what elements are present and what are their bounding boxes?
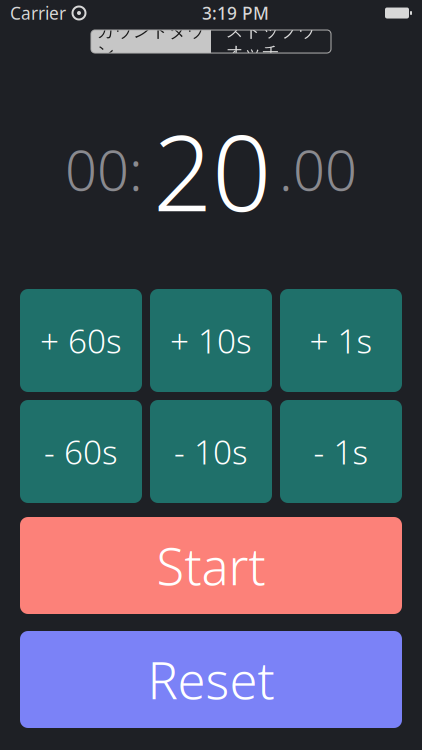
button[interactable]: - 60s	[20, 400, 142, 503]
button[interactable]: + 60s	[20, 289, 142, 392]
staticText: + 1s	[309, 318, 372, 363]
staticText: + 60s	[40, 318, 122, 363]
staticText: .00	[279, 132, 357, 206]
button[interactable]: + 10s	[150, 289, 272, 392]
staticText: - 10s	[174, 429, 248, 474]
staticText: ストップウオッチ	[226, 20, 316, 63]
staticText: 20	[153, 102, 271, 240]
button[interactable]: Reset	[20, 631, 402, 728]
button[interactable]: カウントダウン	[91, 30, 211, 53]
staticText: - 60s	[44, 429, 118, 474]
button[interactable]: - 10s	[150, 400, 272, 503]
staticText: - 1s	[313, 429, 368, 474]
staticText: Carrier	[10, 1, 66, 24]
staticText: 3:19 PM	[202, 1, 269, 24]
button[interactable]: + 1s	[280, 289, 402, 392]
button[interactable]: Start	[20, 517, 402, 614]
staticText: Start	[156, 532, 265, 599]
staticText: + 10s	[170, 318, 252, 363]
staticText: カウントダウン	[97, 20, 205, 63]
button[interactable]: ストップウオッチ	[211, 30, 331, 53]
staticText: Reset	[147, 646, 274, 713]
staticText: 00:	[65, 132, 143, 206]
button[interactable]: - 1s	[280, 400, 402, 503]
